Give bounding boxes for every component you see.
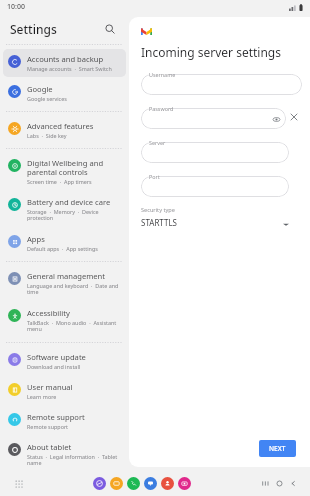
button[interactable]: My Files [110,477,123,490]
button[interactable]: Show password [141,108,286,129]
button[interactable]: Internet [93,477,106,490]
staticText: Remote support [27,412,85,422]
staticText: TalkBack · Mono audio · Assistant menu [27,319,121,333]
staticText: Security type [141,206,175,214]
button[interactable]: Remote support [3,407,126,435]
staticText: Digital Wellbeing and parental controls [27,158,121,177]
button[interactable]: Recent apps [258,476,272,490]
button[interactable]: Contacts [161,477,174,490]
staticText: Learn more [27,393,57,400]
staticText: Manage accounts · Smart Switch [27,65,112,72]
staticText: Battery and device care [27,197,111,207]
staticText: Accounts and backup [27,54,104,64]
staticText: Password [149,105,174,112]
button[interactable]: Digital Wellbeing and parental controls [3,153,126,190]
staticText: Username [149,71,176,78]
button[interactable]: Home [272,476,286,490]
staticText: General management [27,271,106,281]
button[interactable]: Apps [3,229,126,257]
button[interactable]: Camera [178,477,191,490]
button[interactable] [141,74,302,95]
staticText: Language and keyboard · Date and time [27,282,121,296]
button[interactable]: Accessibility [3,303,126,338]
staticText: Download and install [27,363,81,370]
staticText: Default apps · App settings [27,245,98,252]
button[interactable]: Messages [144,477,157,490]
button[interactable]: Clear password [286,109,302,125]
staticText: Status · Legal information · Tablet name [27,453,121,467]
staticText: Screen time · App timers [27,178,92,185]
button[interactable]: About tablet [3,437,126,470]
button[interactable] [141,176,289,197]
button[interactable]: NEXT [259,440,296,457]
button[interactable]: User manual [3,377,126,405]
staticText: NEXT [269,444,286,453]
staticText: Settings [10,21,57,37]
button[interactable]: Software update [3,347,126,375]
button[interactable]: All apps [10,475,26,491]
button[interactable]: Battery and device care [3,192,126,227]
staticText: Storage · Memory · Device protection [27,208,121,222]
button[interactable]: Show password [270,113,282,125]
button[interactable]: Google [3,79,126,107]
staticText: Remote support [27,423,69,430]
staticText: Google services [27,95,67,102]
button[interactable]: Security type [141,206,289,228]
staticText: Software update [27,352,86,362]
button[interactable] [141,142,289,163]
staticText: About tablet [27,442,72,452]
staticText: Port [149,173,160,180]
staticText: 10:00 [7,2,25,12]
button[interactable]: General management [3,266,126,301]
staticText: User manual [27,382,73,392]
button[interactable]: Phone [127,477,140,490]
staticText: Apps [27,234,45,244]
staticText: Accessibility [27,308,70,318]
staticText: STARTTLS [141,217,178,228]
staticText: Incoming server settings [141,44,281,60]
button[interactable]: Accounts and backup [3,49,126,77]
button[interactable]: Advanced features [3,116,126,144]
staticText: Server [149,139,166,146]
staticText: Advanced features [27,121,94,131]
staticText: Google [27,84,53,94]
button[interactable]: Search settings [101,20,119,38]
staticText: Labs · Side key [27,132,67,139]
button[interactable]: Back [286,476,300,490]
